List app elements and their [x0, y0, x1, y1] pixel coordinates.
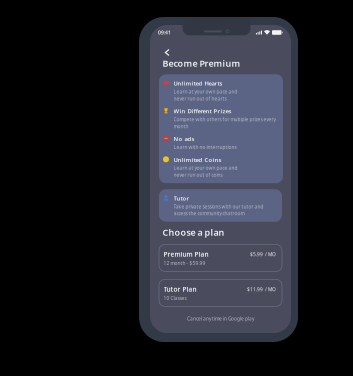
button[interactable]: Premium Plan	[159, 244, 282, 271]
staticText: Cancel any time in Google play	[187, 315, 254, 322]
staticText: $5.99 / MO	[250, 251, 276, 258]
staticText: Win Different Prizes	[173, 107, 231, 115]
staticText: Unlimited Coins	[173, 156, 221, 164]
staticText: Compete with others for multiple prizes …	[173, 116, 275, 130]
button[interactable]: Back	[150, 40, 180, 56]
staticText: Choose a plan	[162, 226, 224, 238]
staticText: 09:41	[158, 29, 171, 36]
staticText: Learn at your own pace and never run out…	[173, 165, 237, 178]
button[interactable]: Tutor Plan	[159, 279, 282, 306]
staticText: Take private sessions with our tutor and…	[173, 203, 263, 217]
staticText: No ads	[173, 135, 194, 143]
staticText: $11.99 / MO	[247, 286, 276, 293]
staticText: 10 Classes	[163, 295, 186, 301]
staticText: Tutor	[173, 194, 189, 202]
staticText: 12 month - $59.99	[163, 260, 205, 266]
staticText: Premium Plan	[163, 250, 208, 259]
button[interactable]: Tutor	[159, 189, 282, 222]
staticText: Become Premium	[162, 57, 240, 69]
staticText: Unlimited Hearts	[173, 79, 222, 87]
staticText: Learn with no interruptions	[173, 144, 236, 150]
staticText: Learn at your own pace and never run out…	[173, 88, 237, 102]
staticText: Tutor Plan	[163, 285, 196, 294]
